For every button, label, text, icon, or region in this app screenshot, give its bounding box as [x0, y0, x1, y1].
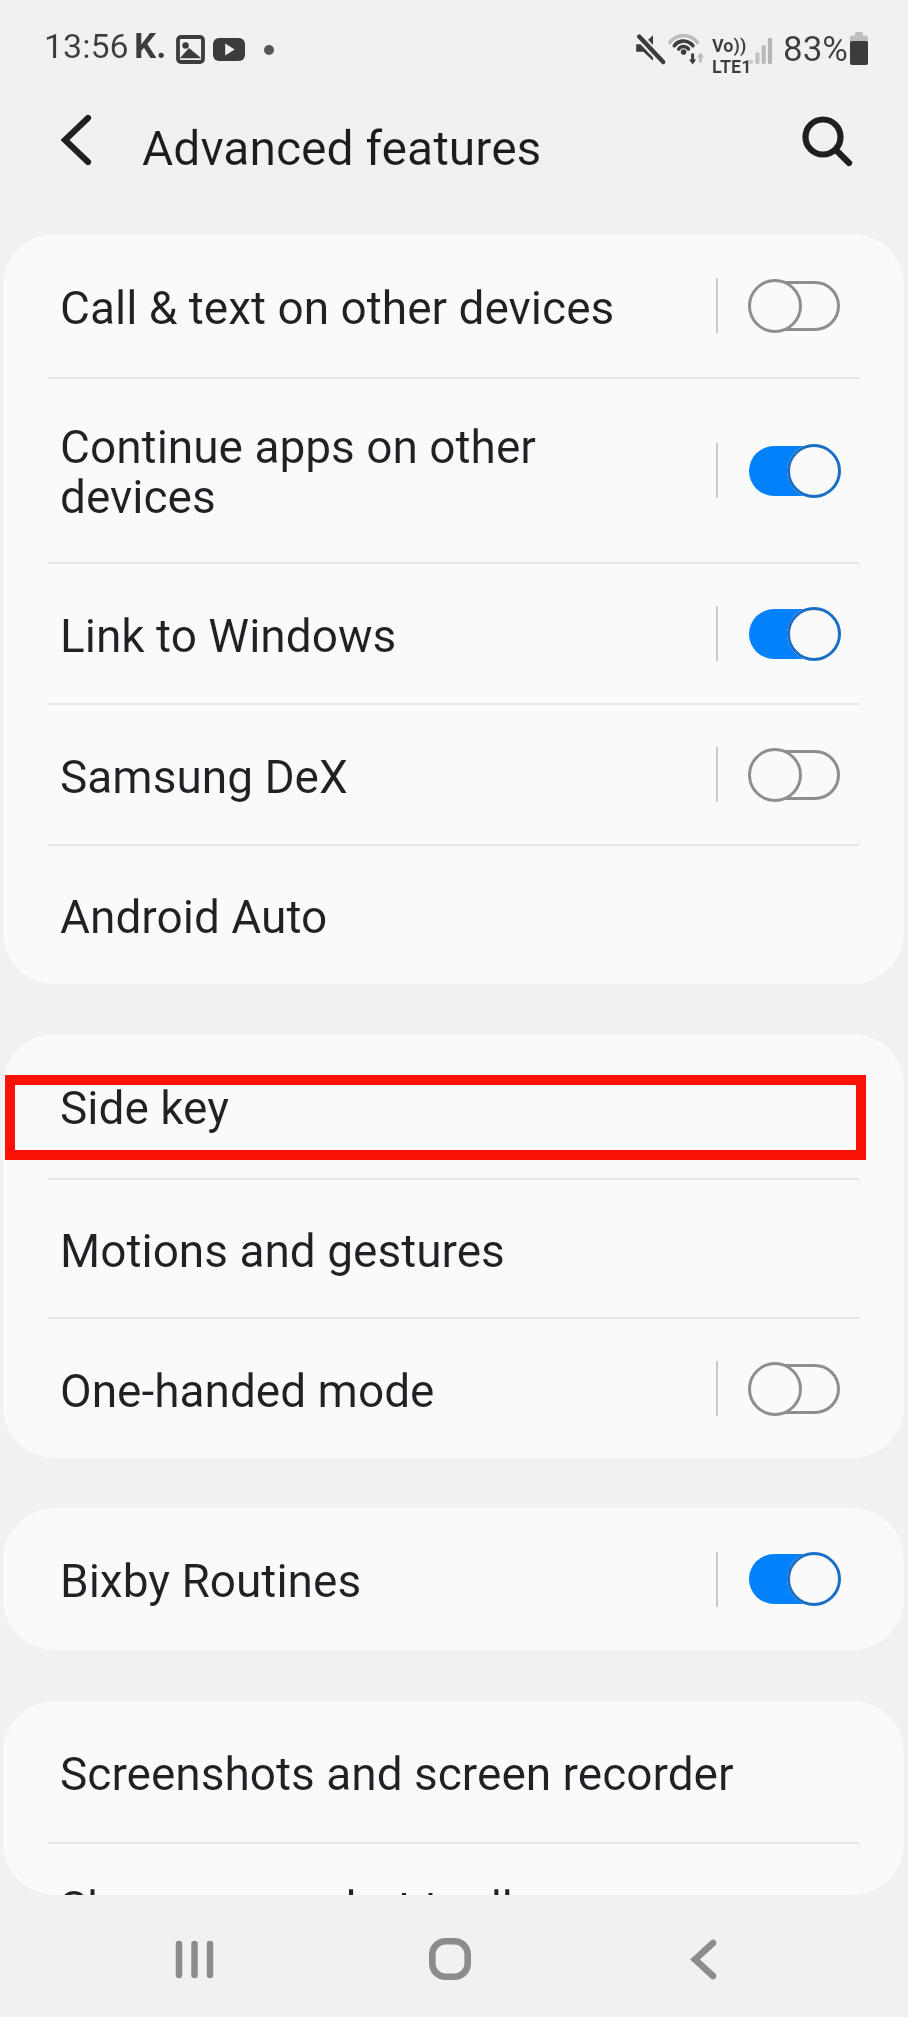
staticText: Bixby Routines — [60, 1554, 716, 1608]
button[interactable]: Side key — [3, 1034, 904, 1178]
staticText: Screenshots and screen recorder — [60, 1747, 864, 1801]
staticText: Side key — [60, 1081, 864, 1135]
staticText: Advanced features — [142, 120, 542, 176]
staticText: Vo)) — [712, 35, 747, 56]
button[interactable]: Screenshots and screen recorder — [3, 1701, 904, 1842]
button[interactable]: Home — [375, 1895, 525, 2017]
staticText: Continue apps on other devices — [60, 420, 716, 525]
button[interactable]: Link to Windows — [3, 564, 904, 703]
staticText: Link to Windows — [60, 609, 716, 663]
staticText: Motions and gestures — [60, 1224, 864, 1278]
staticText: Show screenshot toolbar — [60, 1881, 569, 1895]
staticText: 83% — [783, 29, 848, 70]
button[interactable]: Search — [785, 97, 870, 223]
staticText: K. — [134, 26, 167, 67]
staticText: Samsung DeX — [60, 750, 716, 804]
staticText: One-handed mode — [60, 1364, 716, 1418]
button[interactable]: Android Auto — [3, 846, 904, 984]
button[interactable]: Continue apps on other devices — [3, 379, 904, 562]
button[interactable]: Samsung DeX — [3, 705, 904, 844]
button[interactable]: Motions and gestures — [3, 1180, 904, 1317]
staticText: LTE1 — [712, 56, 752, 77]
button[interactable]: Bixby Routines — [3, 1508, 904, 1650]
button[interactable]: Recents — [121, 1895, 271, 2017]
button[interactable]: Call & text on other devices — [3, 234, 904, 377]
button[interactable]: Back — [36, 97, 121, 223]
staticText: 13:56 — [44, 26, 129, 66]
button[interactable]: One-handed mode — [3, 1319, 904, 1458]
staticText: Android Auto — [60, 890, 864, 944]
staticText: Call & text on other devices — [60, 281, 716, 335]
button[interactable]: Back — [629, 1895, 779, 2017]
